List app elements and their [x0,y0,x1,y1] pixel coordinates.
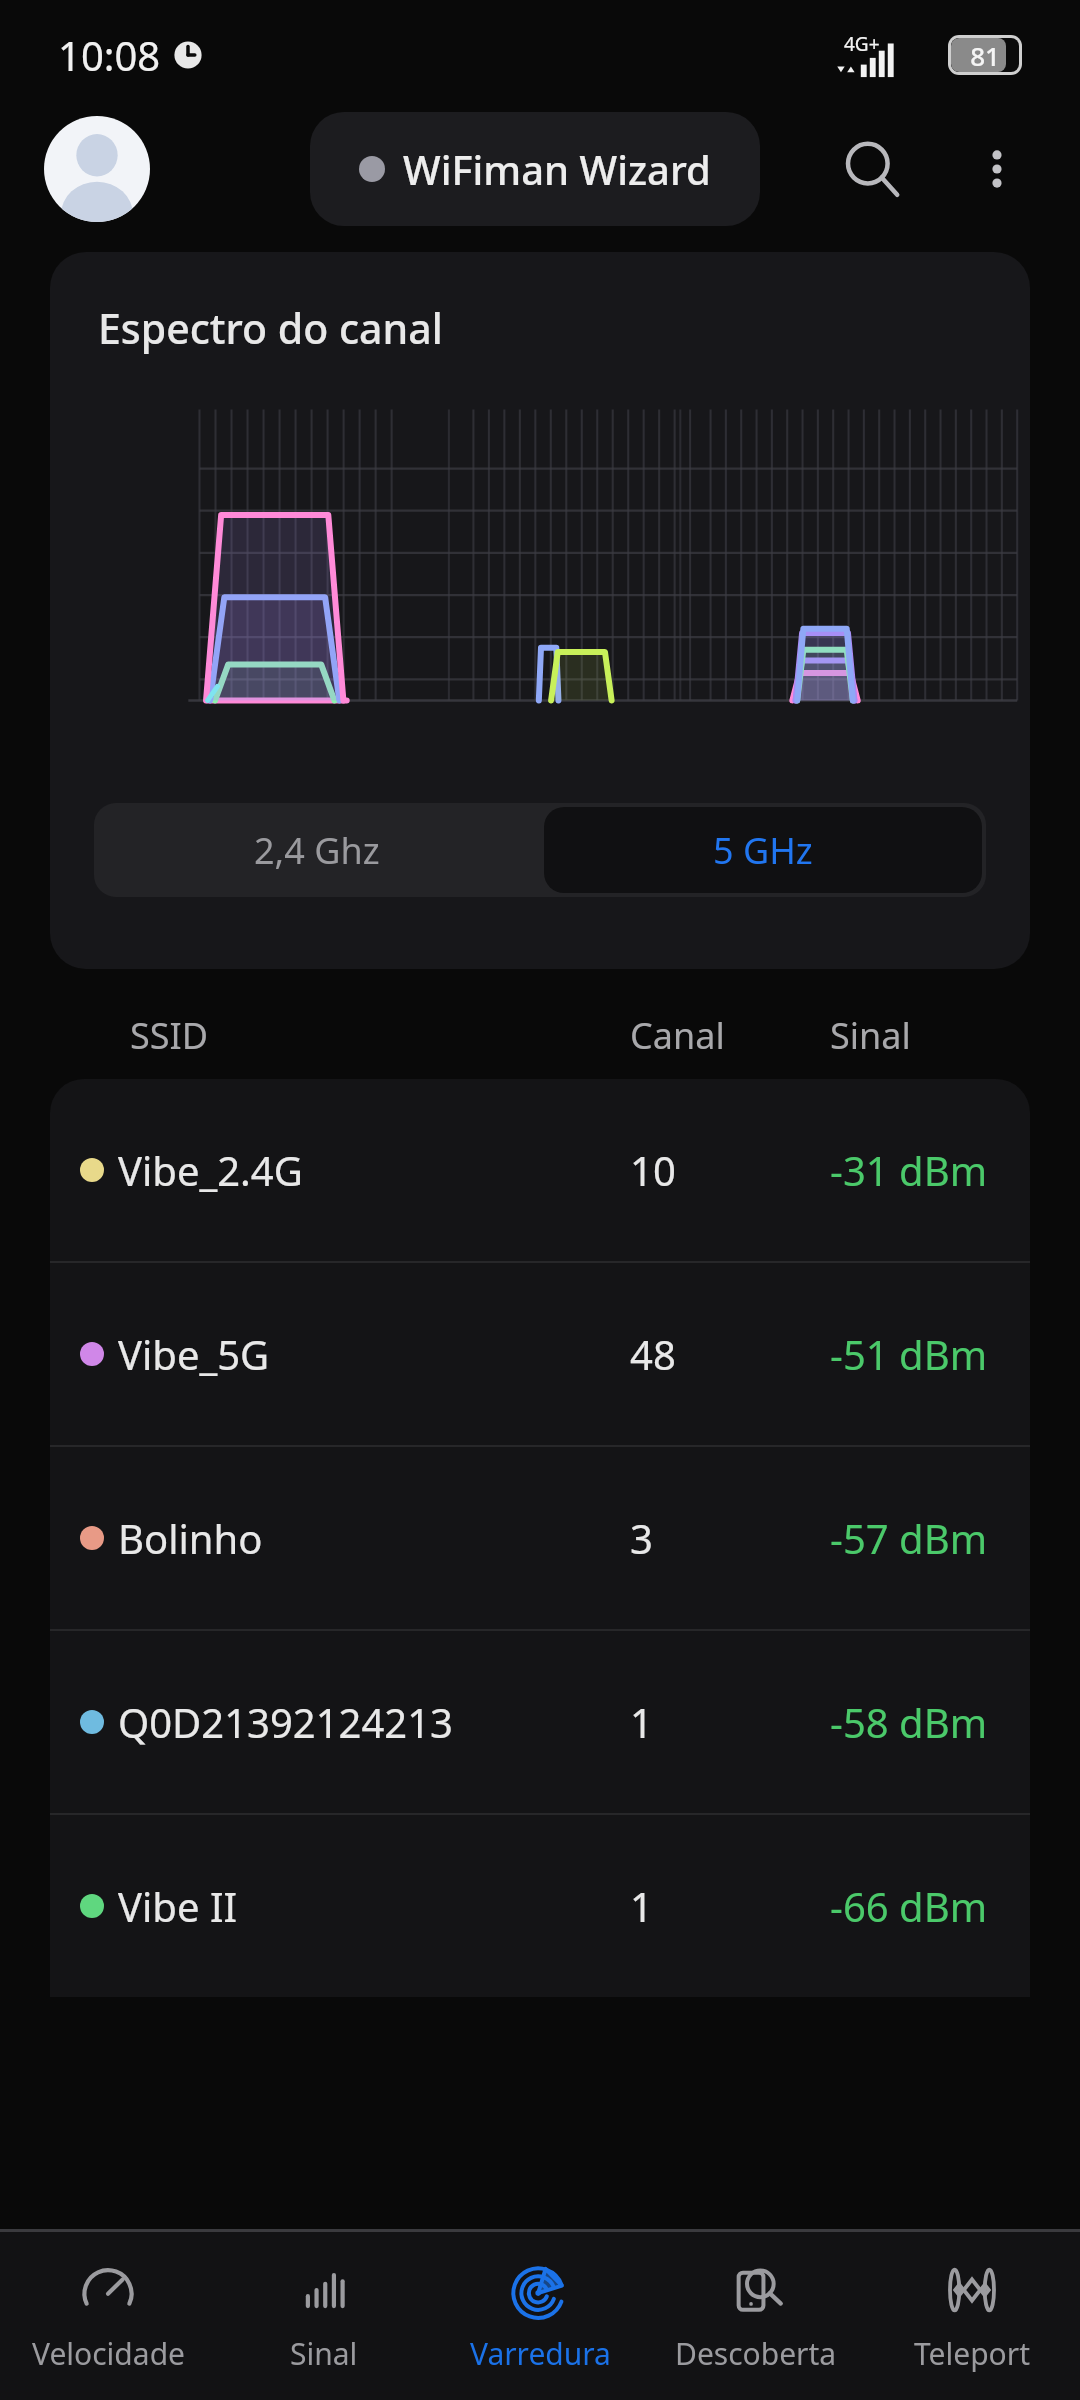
staticText: 10 [630,1143,830,1197]
staticText: Canal [630,1011,830,1060]
staticText: Bolinho [118,1511,630,1565]
staticText: 3 [630,1511,830,1565]
staticText: Vibe_2.4G [118,1143,630,1197]
staticText: 1 [630,1879,830,1933]
button[interactable]: Vibe II [50,1815,1030,1997]
staticText: Vibe II [118,1879,630,1933]
button[interactable]: Descoberta [648,2232,864,2400]
button[interactable]: Vibe_2.4G [50,1079,1030,1261]
staticText: -66 dBm [830,1879,1030,1933]
staticText: Descoberta [675,2333,837,2374]
staticText: WiFiman Wizard [403,142,711,196]
button[interactable]: Bolinho [50,1447,1030,1629]
staticText: Sinal [830,1011,1030,1060]
staticText: 4G+ [844,31,880,57]
button[interactable]: Q0D21392124213 [50,1631,1030,1813]
button[interactable]: Account [44,116,150,222]
staticText: -58 dBm [830,1695,1030,1749]
staticText: SSID [130,1011,209,1060]
button[interactable]: Search [824,121,920,217]
staticText: -31 dBm [830,1143,1030,1197]
button[interactable]: Sinal [216,2232,432,2400]
staticText: -51 dBm [830,1327,1030,1381]
button[interactable]: 2,4 Ghz [94,803,540,897]
staticText: Teleport [914,2333,1030,2374]
button[interactable]: 5 GHz [544,807,982,893]
button[interactable]: More options [952,124,1042,214]
staticText: Espectro do canal [98,300,443,356]
button[interactable]: Teleport [864,2232,1080,2400]
staticText: 10:08 [58,28,161,82]
staticText: 2,4 Ghz [254,826,380,875]
button[interactable]: Velocidade [0,2232,216,2400]
staticText: 5 GHz [713,826,813,875]
staticText: Vibe_5G [118,1327,630,1381]
button[interactable]: Vibe_5G [50,1263,1030,1445]
staticText: Sinal [290,2333,358,2374]
staticText: -57 dBm [830,1511,1030,1565]
button[interactable]: WiFiman Wizard [310,112,760,226]
staticText: Varredura [470,2333,611,2374]
staticText: Velocidade [32,2333,185,2374]
staticText: 81 [970,38,1000,72]
button[interactable]: Varredura [432,2232,648,2400]
staticText: Q0D21392124213 [118,1695,630,1749]
staticText: 48 [630,1327,830,1381]
staticText: 1 [630,1695,830,1749]
